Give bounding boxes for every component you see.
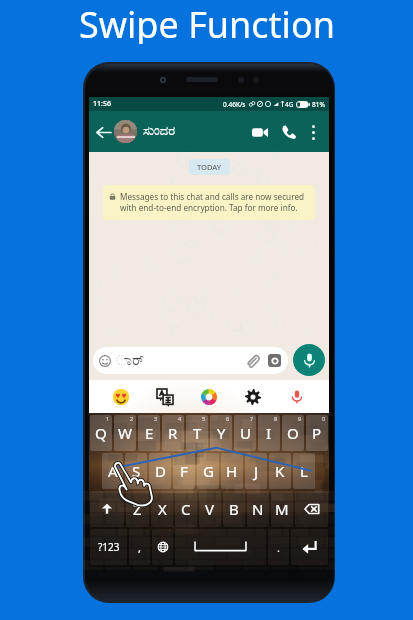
button[interactable]: X <box>151 491 173 527</box>
staticText: Messages to this chat and calls are now … <box>120 191 308 214</box>
staticText: X <box>158 499 167 519</box>
button[interactable]: Z <box>126 491 149 527</box>
staticText: 7 <box>250 415 254 422</box>
staticText: P <box>312 423 322 443</box>
button[interactable]: Back <box>93 122 113 142</box>
staticText: 0 <box>322 415 326 422</box>
staticText: I <box>266 423 272 443</box>
staticText: U <box>240 423 251 443</box>
staticText: M <box>275 499 289 519</box>
button[interactable]: Enter <box>291 529 328 565</box>
staticText: V <box>205 499 215 519</box>
button[interactable]: 9 <box>282 415 304 451</box>
staticText: 8 <box>274 415 278 422</box>
staticText: E <box>145 423 154 443</box>
staticText: K <box>275 461 285 481</box>
staticText: F <box>180 461 188 481</box>
button[interactable]: Translate <box>153 385 177 409</box>
staticText: G <box>203 461 214 481</box>
button[interactable]: Space <box>175 529 266 565</box>
staticText: Swipe Function <box>79 0 335 44</box>
staticText: Z <box>133 499 142 519</box>
staticText: 6 <box>226 415 230 422</box>
staticText: Y <box>217 423 226 443</box>
button[interactable]: ರ್ಾ <box>99 347 281 374</box>
button[interactable]: Backspace <box>295 491 328 527</box>
button[interactable]: N <box>247 491 269 527</box>
staticText: W <box>118 423 132 443</box>
staticText: S <box>132 461 141 481</box>
button[interactable]: Attach <box>245 353 260 368</box>
staticText: A <box>108 461 118 481</box>
staticText: 1 <box>106 415 110 422</box>
button[interactable]: C <box>175 491 197 527</box>
staticText: J <box>254 461 259 481</box>
button[interactable]: 3 <box>138 415 160 451</box>
button[interactable]: Emoji <box>109 385 133 409</box>
staticText: ಸುಂದರ <box>143 125 176 138</box>
button[interactable]: 5 <box>186 415 208 451</box>
button[interactable]: G <box>197 453 219 489</box>
staticText: . <box>277 540 280 555</box>
button[interactable]: Camera <box>268 354 281 367</box>
button[interactable]: 1 <box>90 415 112 451</box>
button[interactable]: Messages to this chat and calls are now … <box>109 191 308 214</box>
button[interactable]: Call <box>278 121 300 143</box>
button[interactable]: ?123 <box>90 529 127 565</box>
staticText: D <box>155 461 166 481</box>
button[interactable]: 4 <box>162 415 184 451</box>
button[interactable]: M <box>271 491 293 527</box>
staticText: ?123 <box>98 540 120 554</box>
button[interactable]: Settings <box>241 385 265 409</box>
staticText: C <box>181 499 191 519</box>
button[interactable]: . <box>268 529 289 565</box>
button[interactable]: Language <box>152 529 173 565</box>
button[interactable]: J <box>245 453 267 489</box>
button[interactable]: 8 <box>258 415 280 451</box>
button[interactable]: L <box>293 453 315 489</box>
staticText: ರ್ಾ <box>116 354 144 368</box>
staticText: B <box>229 499 239 519</box>
button[interactable]: , <box>129 529 150 565</box>
button[interactable]: K <box>269 453 291 489</box>
staticText: R <box>168 423 178 443</box>
button[interactable]: Voice message <box>293 344 325 376</box>
button[interactable]: Video call <box>249 121 271 143</box>
staticText: TODAY <box>197 162 222 172</box>
staticText: Q <box>95 423 107 443</box>
button[interactable]: Voice input <box>285 385 309 409</box>
button[interactable]: A <box>102 453 123 489</box>
staticText: H <box>226 461 238 481</box>
button[interactable]: Profile photo <box>114 120 137 143</box>
button[interactable]: 6 <box>210 415 232 451</box>
staticText: 5 <box>202 415 206 422</box>
button[interactable]: Themes <box>197 385 221 409</box>
staticText: 4 <box>178 415 182 422</box>
staticText: 0.46K/s <box>223 100 246 109</box>
button[interactable]: 7 <box>234 415 256 451</box>
staticText: T <box>193 423 202 443</box>
button[interactable]: S <box>125 453 147 489</box>
button[interactable]: TODAY <box>197 162 222 172</box>
staticText: , <box>138 540 141 555</box>
staticText: 2 <box>130 415 134 422</box>
staticText: O <box>287 423 299 443</box>
button[interactable]: V <box>199 491 221 527</box>
button[interactable]: D <box>149 453 171 489</box>
staticText: 81% <box>312 100 325 109</box>
button[interactable]: 0 <box>306 415 328 451</box>
button[interactable]: More options <box>303 122 323 142</box>
button[interactable]: H <box>221 453 243 489</box>
button[interactable]: B <box>223 491 245 527</box>
staticText: 4G <box>285 100 294 109</box>
button[interactable]: F <box>173 453 195 489</box>
staticText: N <box>252 499 264 519</box>
button[interactable]: 2 <box>114 415 136 451</box>
staticText: 9 <box>298 415 302 422</box>
button[interactable]: Shift <box>90 491 124 527</box>
staticText: L <box>300 461 308 481</box>
staticText: 11:56 <box>93 99 111 109</box>
staticText: 3 <box>154 415 158 422</box>
